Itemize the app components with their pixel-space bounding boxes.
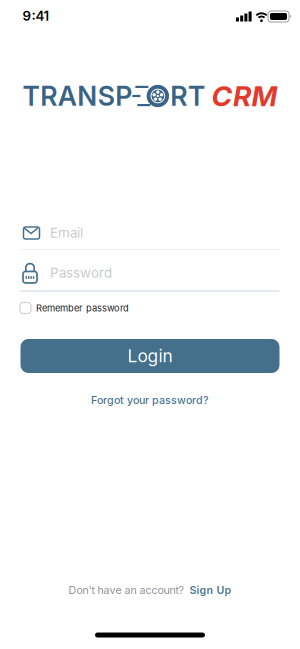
staticText: 9:41 [22, 8, 49, 24]
staticText: TRANSP [23, 80, 132, 112]
button[interactable]: Email [0, 225, 300, 241]
staticText: Login [127, 346, 172, 366]
staticText: RT [170, 80, 205, 112]
staticText: Don't have an account? [68, 584, 183, 596]
staticText: Password [50, 265, 112, 281]
staticText: CRM [205, 79, 277, 112]
staticText: Sign Up [189, 584, 231, 596]
staticText: Remember password [36, 302, 129, 313]
button[interactable]: Forgot your password? [91, 394, 209, 406]
button[interactable]: Login [20, 339, 279, 373]
staticText: Email [50, 225, 83, 241]
button[interactable]: Remember password [0, 302, 300, 313]
button[interactable]: Password [0, 262, 300, 284]
staticText: Forgot your password? [91, 394, 209, 406]
button[interactable]: Sign Up [189, 584, 231, 596]
